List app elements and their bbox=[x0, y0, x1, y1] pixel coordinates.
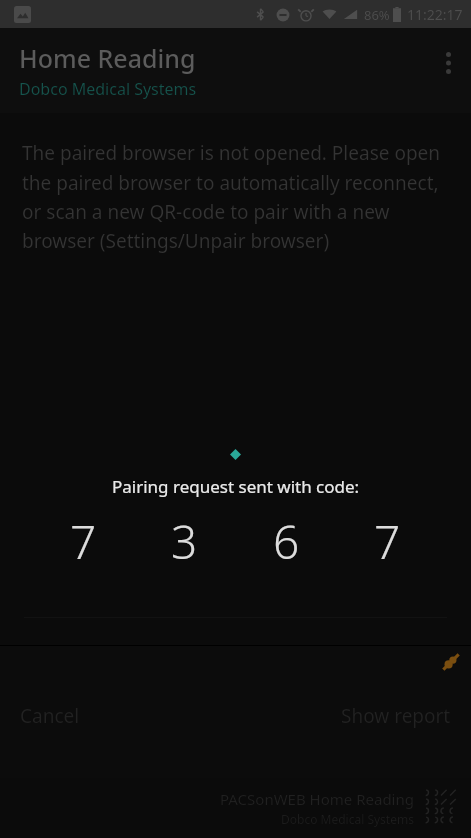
staticText: 11:22:17 bbox=[407, 5, 463, 24]
staticText: Show report bbox=[341, 703, 451, 729]
staticText: PACSonWEB Home Reading bbox=[220, 789, 414, 809]
staticText: 7 bbox=[70, 510, 97, 573]
button[interactable]: More options bbox=[425, 40, 471, 86]
staticText: Pairing request sent with code: bbox=[112, 475, 360, 498]
staticText: Cancel bbox=[20, 703, 80, 729]
staticText: 3 bbox=[171, 510, 198, 573]
staticText: The paired browser is not opened. Please… bbox=[22, 140, 453, 253]
other: Connection broken bbox=[439, 650, 463, 674]
button[interactable]: Cancel bbox=[8, 693, 92, 739]
staticText: Dobco Medical Systems bbox=[19, 78, 197, 100]
staticText: 86% bbox=[364, 6, 390, 24]
staticText: 7 bbox=[374, 510, 401, 573]
staticText: Dobco Medical Systems bbox=[281, 811, 414, 827]
staticText: 6 bbox=[273, 510, 300, 573]
staticText: Home Reading bbox=[19, 41, 196, 75]
button[interactable]: Show report bbox=[329, 693, 463, 739]
